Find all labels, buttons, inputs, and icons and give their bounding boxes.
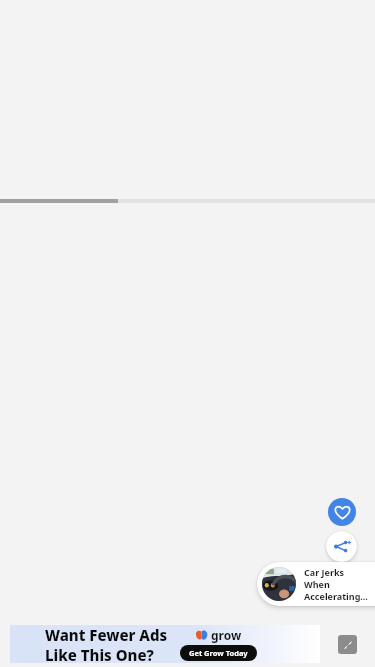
- staticText: When: [304, 578, 330, 590]
- button[interactable]: Want Fewer Ads: [10, 625, 320, 663]
- staticText: Car Jerks: [304, 566, 345, 578]
- staticText: Like This One?: [45, 645, 154, 663]
- button[interactable]: Get Grow Today: [189, 648, 248, 658]
- staticText: Accelerating...: [304, 590, 368, 602]
- staticText: Want Fewer Ads: [45, 625, 168, 645]
- button[interactable]: Car Jerks: [257, 562, 375, 606]
- staticText: Get Grow Today: [189, 648, 248, 658]
- button[interactable]: Share: [326, 531, 357, 562]
- button[interactable]: Ad info: [338, 635, 357, 654]
- staticText: grow: [211, 627, 242, 643]
- button[interactable]: Like: [328, 498, 356, 526]
